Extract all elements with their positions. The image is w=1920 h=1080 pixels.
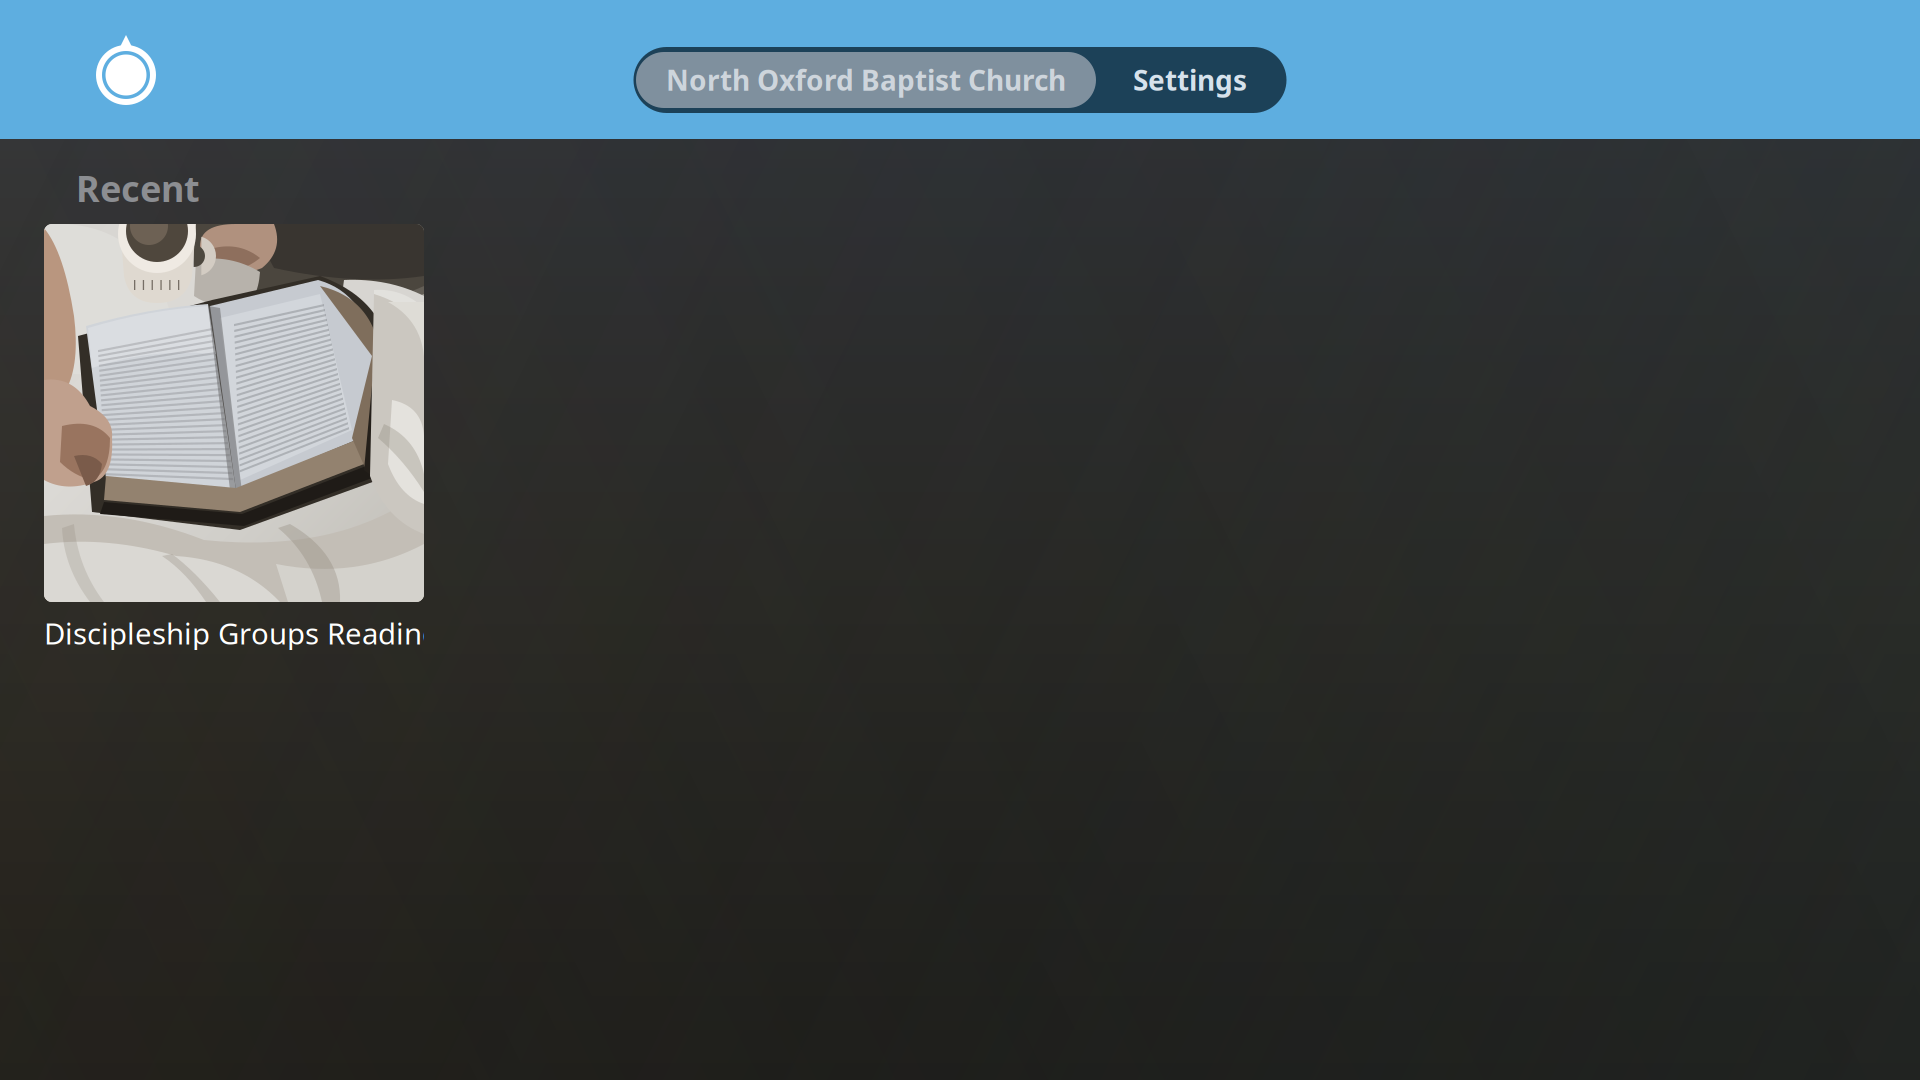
- button[interactable]: Home: [93, 34, 159, 100]
- staticText: Recent: [76, 164, 200, 212]
- button[interactable]: Settings: [1096, 52, 1284, 108]
- staticText: North Oxford Baptist Church: [666, 61, 1066, 99]
- button[interactable]: Discipleship Groups Reading Plan: [44, 224, 424, 656]
- button[interactable]: North Oxford Baptist Church: [636, 52, 1096, 108]
- staticText: Discipleship Groups Reading Plan: [44, 613, 508, 652]
- staticText: Settings: [1133, 61, 1247, 99]
